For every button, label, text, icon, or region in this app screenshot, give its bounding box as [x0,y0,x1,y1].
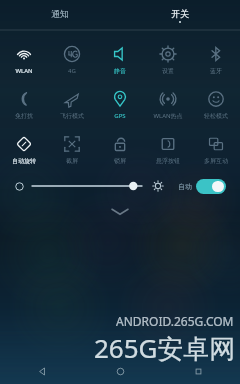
staticText: 蓝牙 [210,67,222,75]
staticText: WLAN [15,67,33,75]
button[interactable] [32,178,148,194]
button[interactable]: 自动 [178,179,226,194]
button[interactable]: 免打扰 [0,82,48,127]
staticText: 多屏互动 [204,157,228,165]
staticText: 开关 [171,8,189,19]
other: Low brightness [14,181,25,192]
staticText: 265G安卓网 [94,330,236,366]
staticText: 自动 [178,182,192,191]
button[interactable]: WLAN [0,37,48,82]
staticText: 自动旋转 [12,157,36,165]
button[interactable]: 悬浮按钮 [144,127,192,172]
staticText: 悬浮按钮 [156,157,180,165]
staticText: 截屏 [66,157,78,165]
button[interactable]: 开关 [120,0,240,30]
button[interactable]: 锁屏 [96,127,144,172]
button[interactable]: Home [107,358,133,384]
button[interactable]: 4G [48,37,96,82]
button[interactable]: 静音 [96,37,144,82]
button[interactable]: GPS [96,82,144,127]
staticText: 通知 [51,8,69,19]
other: High brightness [152,180,164,192]
staticText: WLAN热点 [153,112,183,120]
staticText: GPS [114,112,126,120]
staticText: 免打扰 [15,112,33,120]
button[interactable]: 通知 [0,0,120,30]
button[interactable]: WLAN热点 [144,82,192,127]
button[interactable]: Collapse [0,200,240,222]
staticText: 设置 [162,67,174,75]
button[interactable]: 飞行模式 [48,82,96,127]
button[interactable]: 自动旋转 [0,127,48,172]
button[interactable]: 蓝牙 [192,37,240,82]
button[interactable]: 设置 [144,37,192,82]
staticText: 4G [68,67,76,75]
button[interactable]: 轻松模式 [192,82,240,127]
button[interactable]: 多屏互动 [192,127,240,172]
staticText: ANDROID.265G.COM [116,313,234,329]
staticText: 静音 [114,67,126,75]
button[interactable]: Back [29,358,55,384]
staticText: 锁屏 [114,157,126,165]
staticText: 飞行模式 [60,112,84,120]
staticText: 轻松模式 [204,112,228,120]
button[interactable]: 截屏 [48,127,96,172]
button[interactable]: Recent apps [185,358,211,384]
